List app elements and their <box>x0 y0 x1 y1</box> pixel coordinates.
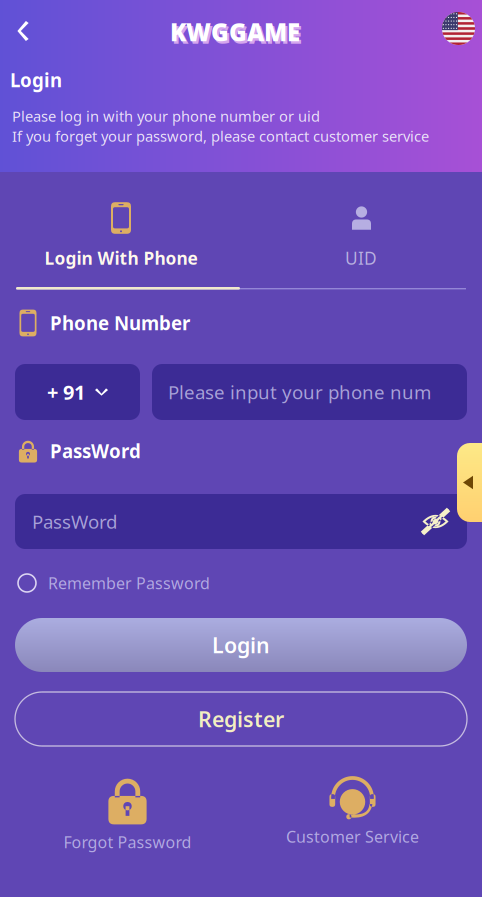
button[interactable]: Login <box>15 618 467 672</box>
button[interactable]: Customer Service <box>265 773 440 850</box>
staticText: Customer Service <box>286 826 419 847</box>
staticText: PassWord <box>32 509 117 534</box>
button[interactable]: UID <box>241 190 482 290</box>
staticText: Please input your phone num <box>168 380 431 404</box>
staticText: Login With Phone <box>44 246 197 269</box>
staticText: Forgot Password <box>63 831 191 853</box>
staticText: PassWord <box>50 439 141 463</box>
button[interactable]: Remember Password <box>15 570 265 596</box>
button[interactable]: Please input your phone num <box>152 364 467 420</box>
button[interactable]: PassWord <box>15 494 467 549</box>
staticText: KWGGAME <box>172 19 302 50</box>
button[interactable]: + 91 <box>15 364 140 420</box>
staticText: Remember Password <box>48 572 210 594</box>
staticText: KWGGAME <box>170 16 300 48</box>
staticText: + 91 <box>47 379 85 405</box>
staticText: Register <box>198 705 284 733</box>
staticText: Login <box>212 631 270 659</box>
button[interactable]: Back <box>2 10 44 52</box>
staticText: Phone Number <box>50 311 190 335</box>
staticText: Login <box>10 68 62 92</box>
button[interactable]: Forgot Password <box>40 775 215 850</box>
button[interactable]: Language <box>442 12 482 47</box>
staticText: UID <box>345 246 377 269</box>
button[interactable]: Login With Phone <box>0 190 241 290</box>
button[interactable]: Register <box>15 692 467 746</box>
button[interactable]: Open side panel <box>457 443 482 522</box>
staticText: Please log in with your phone number or … <box>12 106 320 126</box>
staticText: If you forget your password, please cont… <box>12 126 429 146</box>
